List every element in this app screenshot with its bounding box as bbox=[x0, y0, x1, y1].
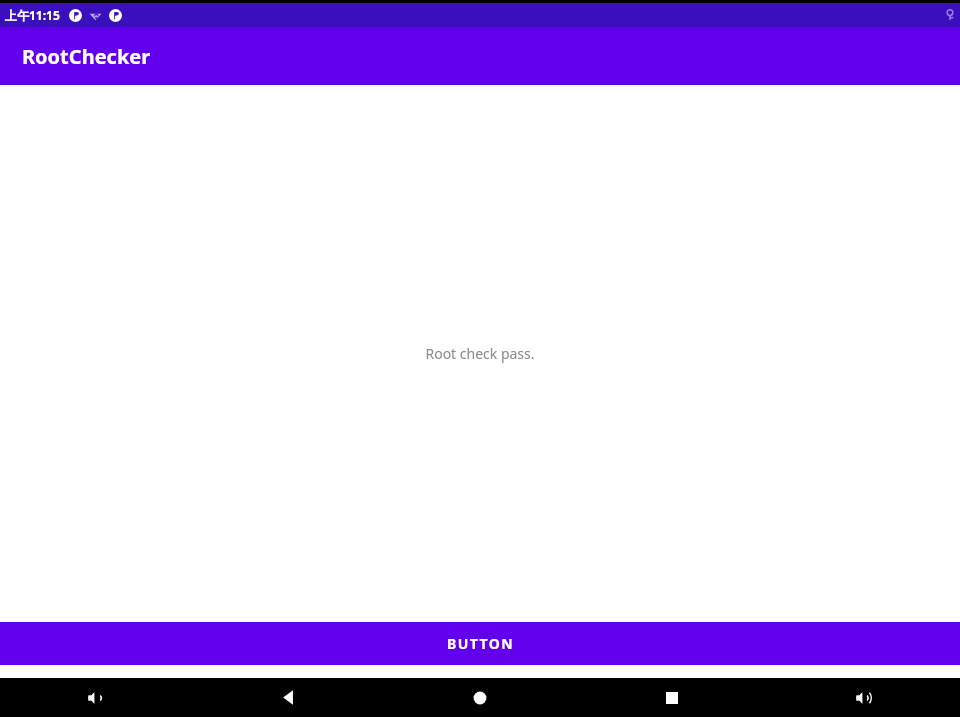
button[interactable]: Recent apps bbox=[576, 678, 768, 717]
button[interactable]: BUTTON bbox=[0, 622, 960, 665]
staticText: BUTTON bbox=[447, 634, 514, 653]
button[interactable]: Volume down bbox=[0, 678, 192, 717]
staticText: Root check pass. bbox=[425, 344, 535, 363]
button[interactable]: Back bbox=[192, 678, 384, 717]
button[interactable]: Home bbox=[384, 678, 576, 717]
staticText: 上午11:15 bbox=[5, 7, 60, 23]
staticText: RootChecker bbox=[22, 43, 151, 70]
button[interactable]: Volume up bbox=[768, 678, 960, 717]
